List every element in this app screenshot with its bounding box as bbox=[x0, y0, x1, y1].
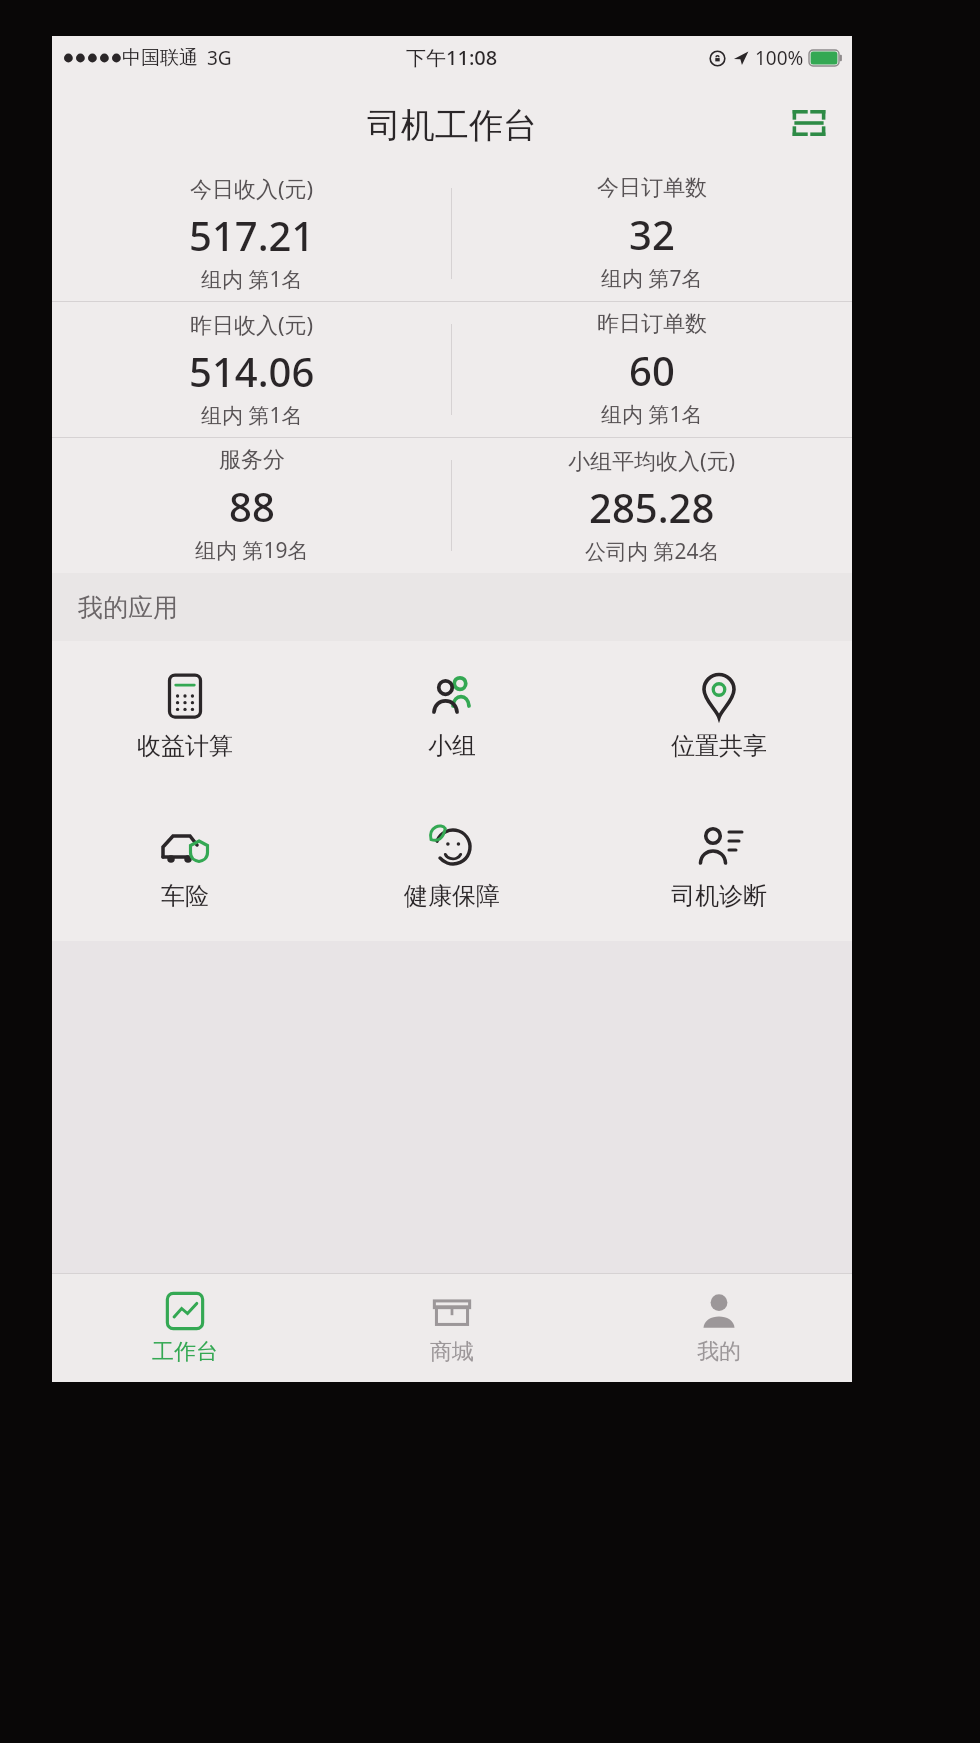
button[interactable]: 昨日订单数 bbox=[452, 302, 852, 437]
button[interactable]: 收益计算 bbox=[52, 641, 318, 791]
button[interactable]: 我的 bbox=[585, 1274, 852, 1382]
staticText: 车险 bbox=[161, 881, 209, 911]
staticText: 小组平均收入(元) bbox=[568, 445, 736, 475]
staticText: 服务分 bbox=[219, 446, 285, 474]
staticText: 组内 第1名 bbox=[601, 400, 703, 429]
button[interactable]: 车险 bbox=[52, 791, 318, 941]
button[interactable]: 昨日收入(元) bbox=[52, 302, 451, 437]
staticText: 组内 第1名 bbox=[201, 265, 303, 294]
staticText: 组内 第19名 bbox=[195, 536, 309, 565]
staticText: 88 bbox=[229, 479, 275, 533]
button[interactable]: 今日订单数 bbox=[452, 166, 852, 301]
staticText: 工作台 bbox=[152, 1338, 218, 1366]
staticText: 517.21 bbox=[189, 208, 315, 262]
staticText: 今日收入(元) bbox=[190, 173, 314, 203]
staticText: 昨日订单数 bbox=[597, 310, 707, 338]
button[interactable]: 扫一扫 bbox=[782, 96, 836, 150]
button[interactable]: 健康保障 bbox=[318, 791, 585, 941]
staticText: 商城 bbox=[430, 1338, 474, 1366]
staticText: 我的应用 bbox=[78, 592, 178, 623]
staticText: 健康保障 bbox=[404, 881, 500, 911]
staticText: 司机诊断 bbox=[671, 881, 767, 911]
staticText: 今日订单数 bbox=[597, 174, 707, 202]
staticText: 514.06 bbox=[189, 344, 315, 398]
staticText: 中国联通 bbox=[122, 46, 198, 70]
staticText: 位置共享 bbox=[671, 731, 767, 761]
staticText: 3G bbox=[207, 45, 232, 71]
staticText: 下午11:08 bbox=[406, 44, 498, 71]
button[interactable]: 司机诊断 bbox=[585, 791, 852, 941]
button[interactable]: 服务分 bbox=[52, 438, 451, 573]
staticText: 100% bbox=[755, 45, 804, 71]
staticText: 32 bbox=[629, 207, 675, 261]
staticText: 收益计算 bbox=[137, 731, 233, 761]
staticText: 组内 第7名 bbox=[601, 264, 703, 293]
staticText: 昨日收入(元) bbox=[190, 309, 314, 339]
staticText: 我的 bbox=[697, 1338, 741, 1366]
button[interactable]: 小组 bbox=[318, 641, 585, 791]
staticText: 285.28 bbox=[589, 480, 715, 534]
staticText: 小组 bbox=[428, 731, 476, 761]
button[interactable]: 位置共享 bbox=[585, 641, 852, 791]
button[interactable]: 小组平均收入(元) bbox=[452, 438, 852, 573]
staticText: 司机工作台 bbox=[367, 104, 537, 147]
button[interactable]: 商城 bbox=[318, 1274, 585, 1382]
staticText: 公司内 第24名 bbox=[585, 537, 720, 566]
button[interactable]: 工作台 bbox=[52, 1274, 318, 1382]
staticText: 60 bbox=[629, 343, 675, 397]
button[interactable]: 今日收入(元) bbox=[52, 166, 451, 301]
staticText: 组内 第1名 bbox=[201, 401, 303, 430]
